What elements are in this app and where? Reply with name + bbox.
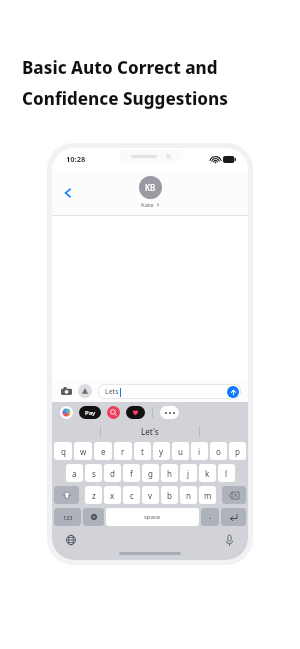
staticText: u	[178, 446, 183, 457]
staticText: d	[110, 468, 115, 479]
staticText: 123	[63, 514, 73, 521]
staticText: s	[92, 468, 96, 479]
staticText: 10:28	[66, 154, 86, 164]
button[interactable]: b	[161, 486, 178, 504]
button[interactable]: k	[199, 464, 216, 482]
button[interactable]: Photos	[60, 406, 73, 419]
button[interactable]: Back	[58, 183, 78, 203]
staticText: Lets	[105, 387, 119, 397]
staticText: a	[72, 468, 77, 479]
staticText: l	[225, 468, 228, 479]
button[interactable]: s	[85, 464, 102, 482]
button[interactable]: Fitness	[126, 406, 145, 419]
button[interactable]: Delete	[222, 486, 246, 504]
button[interactable]: m	[199, 486, 216, 504]
staticText: h	[167, 468, 172, 479]
button[interactable]: e	[94, 442, 112, 460]
button[interactable]: h	[161, 464, 178, 482]
button[interactable]: x	[104, 486, 121, 504]
button[interactable]: d	[104, 464, 121, 482]
button[interactable]: f	[123, 464, 140, 482]
button[interactable]: y	[153, 442, 170, 460]
button[interactable]: More apps	[160, 406, 179, 419]
staticText: Kate	[141, 201, 154, 209]
button[interactable]: u	[172, 442, 189, 460]
button[interactable]: g	[142, 464, 159, 482]
staticText: o	[216, 446, 221, 457]
button[interactable]: Music	[107, 406, 120, 419]
staticText: e	[101, 446, 106, 457]
other: Return	[229, 513, 238, 522]
button[interactable]: q	[54, 442, 72, 460]
button[interactable]: r	[114, 442, 132, 460]
button[interactable]: .	[201, 508, 219, 526]
staticText: f	[130, 468, 133, 479]
staticText: k	[205, 468, 210, 479]
button[interactable]: Camera	[59, 384, 73, 398]
staticText: g	[148, 468, 153, 479]
staticText: w	[80, 446, 87, 457]
staticText: z	[92, 490, 96, 501]
staticText: r	[121, 446, 125, 457]
button[interactable]: a	[66, 464, 83, 482]
button[interactable]: space	[106, 508, 199, 526]
staticText: j	[187, 468, 190, 479]
staticText: c	[130, 490, 134, 501]
staticText: b	[167, 490, 172, 501]
button[interactable]: o	[210, 442, 227, 460]
other: Delete	[229, 492, 239, 499]
button[interactable]: Send	[227, 386, 239, 398]
staticText: Pay	[85, 409, 96, 417]
button[interactable]: l	[218, 464, 235, 482]
staticText: q	[61, 446, 66, 457]
button[interactable]: Apps	[78, 384, 92, 398]
button[interactable]: n	[180, 486, 197, 504]
button[interactable]: KB	[139, 176, 162, 209]
button[interactable]: i	[191, 442, 208, 460]
button[interactable]: p	[229, 442, 246, 460]
staticText: space	[144, 513, 161, 521]
button[interactable]: Dictation	[222, 533, 236, 547]
button[interactable]: Shift	[54, 486, 79, 504]
staticText: x	[110, 490, 115, 501]
staticText: p	[235, 446, 240, 457]
staticText: m	[204, 490, 212, 501]
staticText: Confidence Suggestions	[22, 87, 228, 110]
button[interactable]: Lets	[98, 384, 241, 399]
staticText: v	[148, 490, 153, 501]
button[interactable]: Change keyboard	[83, 508, 104, 526]
button[interactable]: Let's	[141, 426, 159, 437]
staticText: i	[198, 446, 201, 457]
button[interactable]: z	[85, 486, 102, 504]
staticText: y	[159, 446, 164, 457]
other: Change keyboard	[66, 535, 76, 545]
staticText: KB	[145, 182, 156, 193]
button[interactable]: Apple Pay	[79, 406, 101, 419]
button[interactable]: 123	[54, 508, 81, 526]
staticText: n	[186, 490, 191, 501]
button[interactable]: w	[74, 442, 92, 460]
button[interactable]: Change keyboard	[64, 533, 78, 547]
button[interactable]: v	[142, 486, 159, 504]
button[interactable]: j	[180, 464, 197, 482]
staticText: .	[209, 512, 211, 522]
button[interactable]: t	[134, 442, 151, 460]
button[interactable]: Return	[221, 508, 246, 526]
staticText: t	[141, 446, 144, 457]
other: Change keyboard	[91, 514, 97, 520]
staticText: Basic Auto Correct and	[22, 56, 218, 79]
button[interactable]: c	[123, 486, 140, 504]
other: Shift	[63, 491, 71, 499]
